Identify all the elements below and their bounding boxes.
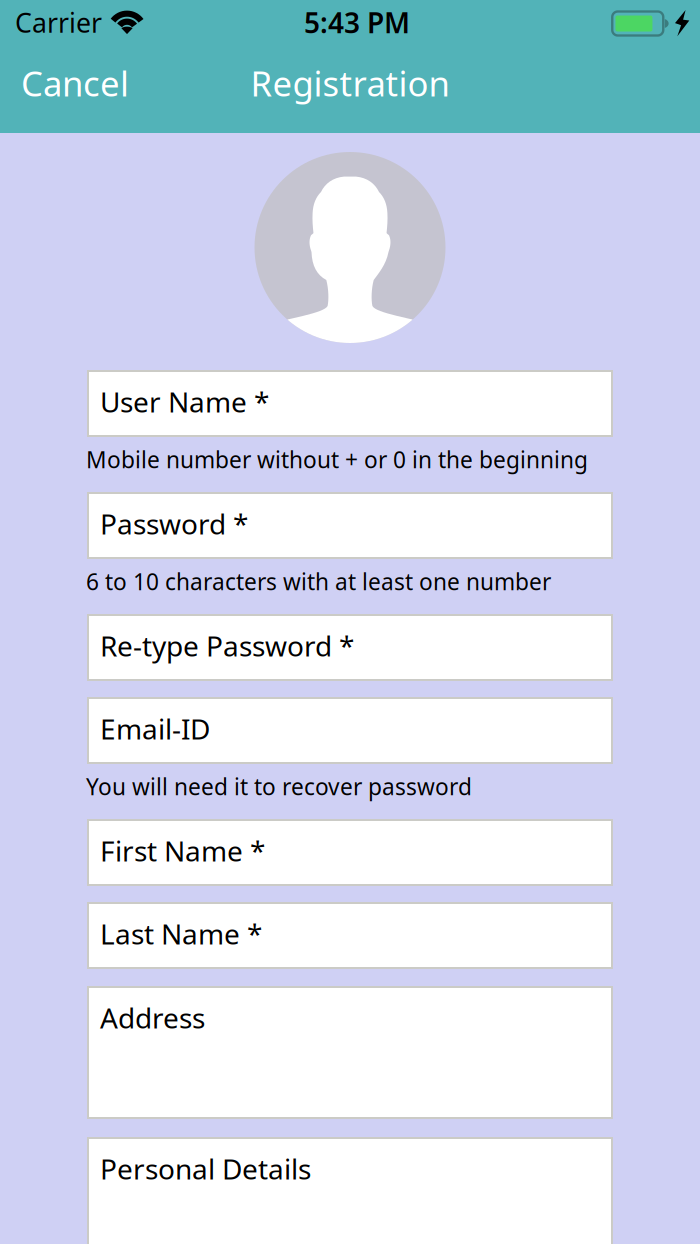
button[interactable]: User Name *: [88, 371, 612, 436]
staticText: Mobile number without + or 0 in the begi…: [86, 444, 588, 474]
staticText: Carrier: [15, 5, 102, 40]
button[interactable]: Re-type Password *: [88, 615, 612, 680]
button[interactable]: Email-ID: [88, 698, 612, 763]
button[interactable]: Personal Details: [88, 1138, 612, 1244]
staticText: Cancel: [21, 60, 129, 106]
button[interactable]: Address: [88, 987, 612, 1118]
staticText: User Name *: [100, 383, 269, 420]
staticText: Email-ID: [100, 710, 210, 747]
staticText: Address: [100, 999, 205, 1036]
staticText: First Name *: [100, 832, 265, 869]
button[interactable]: Last Name *: [88, 903, 612, 968]
staticText: 6 to 10 characters with at least one num…: [86, 566, 551, 596]
button[interactable]: Cancel: [0, 45, 150, 121]
staticText: Password *: [100, 505, 248, 542]
staticText: You will need it to recover password: [86, 771, 472, 801]
button[interactable]: First Name *: [88, 820, 612, 885]
button[interactable]: Password *: [88, 493, 612, 558]
staticText: Personal Details: [100, 1150, 311, 1187]
staticText: Re-type Password *: [100, 627, 354, 664]
staticText: Last Name *: [100, 915, 262, 952]
staticText: Registration: [250, 60, 449, 106]
staticText: 5:43 PM: [304, 4, 410, 41]
